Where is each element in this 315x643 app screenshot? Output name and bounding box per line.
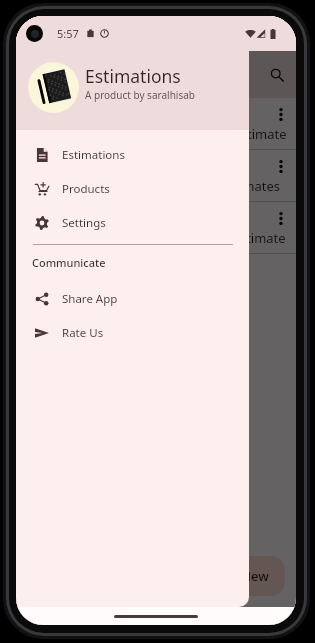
button[interactable]: More options [270, 103, 292, 125]
staticText: 5:57 [57, 26, 79, 41]
staticText: Share App [62, 291, 118, 307]
button[interactable]: More options [270, 155, 292, 177]
button[interactable]: New [204, 556, 285, 596]
button[interactable]: Estimations [16, 138, 249, 172]
staticText: Products [62, 181, 110, 197]
staticText: Settings [62, 215, 106, 231]
button[interactable]: Rate Us [16, 316, 249, 350]
staticText: Kitchen cabinets full remodelling estima… [30, 125, 287, 143]
staticText: A product by saralhisab [85, 88, 195, 102]
staticText: Estimations [85, 64, 181, 88]
staticText: New [241, 567, 269, 585]
button[interactable]: Products [16, 172, 249, 206]
button[interactable]: Search [259, 57, 295, 93]
staticText: Bathroom marble floor retiling estimates [30, 177, 280, 195]
button[interactable]: Settings [16, 206, 249, 240]
staticText: Estimations [62, 147, 125, 163]
button[interactable]: Open navigation menu [24, 57, 60, 93]
button[interactable]: More options [270, 207, 292, 229]
staticText: Living room feature wall re-paint estima… [30, 229, 286, 247]
staticText: Communicate [32, 255, 106, 270]
staticText: Rate Us [62, 325, 104, 341]
button[interactable]: Share App [16, 282, 249, 316]
staticText: Estimations [66, 64, 156, 86]
